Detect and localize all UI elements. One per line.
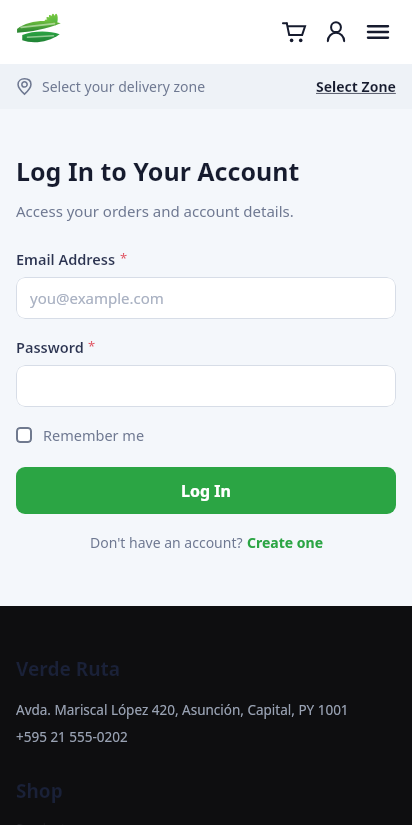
- staticText: *: [120, 249, 128, 267]
- button[interactable]: [16, 365, 396, 407]
- staticText: +595 21 555-0202: [16, 728, 128, 746]
- staticText: *: [88, 337, 96, 355]
- staticText: Access your orders and account details.: [16, 201, 294, 221]
- button[interactable]: Cart: [274, 12, 314, 52]
- staticText: Select your delivery zone: [42, 77, 206, 96]
- button[interactable]: Log In: [16, 467, 396, 514]
- button[interactable]: Select your delivery zone: [16, 77, 206, 96]
- staticText: Log In to Your Account: [16, 154, 300, 188]
- staticText: Create one: [247, 533, 323, 552]
- staticText: Don't have an account?: [90, 533, 247, 552]
- staticText: Log In: [181, 480, 231, 502]
- staticText: you@example.com: [30, 288, 164, 308]
- staticText: Verde Ruta: [16, 656, 121, 682]
- button[interactable]: Remember me: [16, 423, 145, 447]
- staticText: Select Zone: [316, 77, 396, 96]
- button[interactable]: Menu: [358, 12, 398, 52]
- staticText: Remember me: [43, 425, 145, 445]
- staticText: Email Address: [16, 249, 116, 269]
- button[interactable]: Select Zone: [312, 73, 400, 100]
- button[interactable]: Don't have an account?: [90, 533, 323, 552]
- button[interactable]: you@example.com: [16, 277, 396, 319]
- staticText: Password: [16, 337, 84, 357]
- button[interactable]: Account: [316, 12, 356, 52]
- staticText: Avda. Mariscal López 420, Asunción, Capi…: [16, 701, 349, 719]
- button[interactable]: Verde Ruta home: [16, 13, 68, 51]
- staticText: Shop: [16, 778, 63, 804]
